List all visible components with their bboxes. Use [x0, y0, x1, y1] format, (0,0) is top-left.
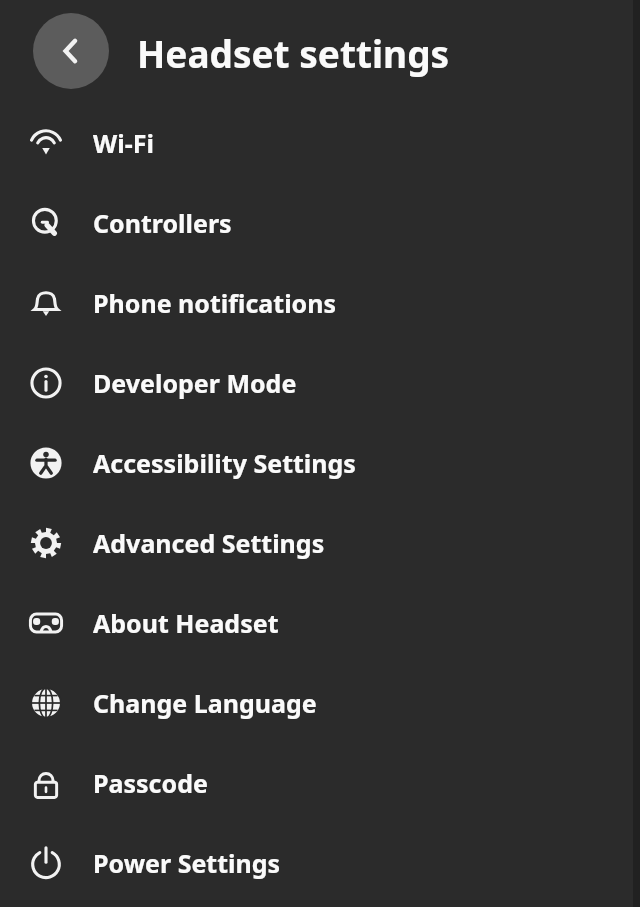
staticText: Wi-Fi — [93, 126, 154, 160]
button[interactable]: Developer Mode — [0, 343, 640, 423]
button[interactable]: Phone notifications — [0, 263, 640, 343]
staticText: Phone notifications — [93, 286, 337, 320]
staticText: Power Settings — [93, 846, 281, 880]
button[interactable]: Passcode — [0, 743, 640, 823]
staticText: Controllers — [93, 206, 232, 240]
button[interactable]: Accessibility Settings — [0, 423, 640, 503]
button[interactable]: Controllers — [0, 183, 640, 263]
staticText: About Headset — [93, 606, 279, 640]
staticText: Headset settings — [137, 28, 450, 78]
button[interactable]: About Headset — [0, 583, 640, 663]
button[interactable]: Wi-Fi — [0, 103, 640, 183]
button[interactable]: Advanced Settings — [0, 503, 640, 583]
staticText: Change Language — [93, 686, 317, 720]
button[interactable]: Power Settings — [0, 823, 640, 903]
staticText: Accessibility Settings — [93, 446, 356, 480]
button[interactable]: Back — [33, 13, 109, 89]
staticText: Passcode — [93, 766, 208, 800]
button[interactable]: Change Language — [0, 663, 640, 743]
staticText: Developer Mode — [93, 366, 297, 400]
staticText: Advanced Settings — [93, 526, 325, 560]
